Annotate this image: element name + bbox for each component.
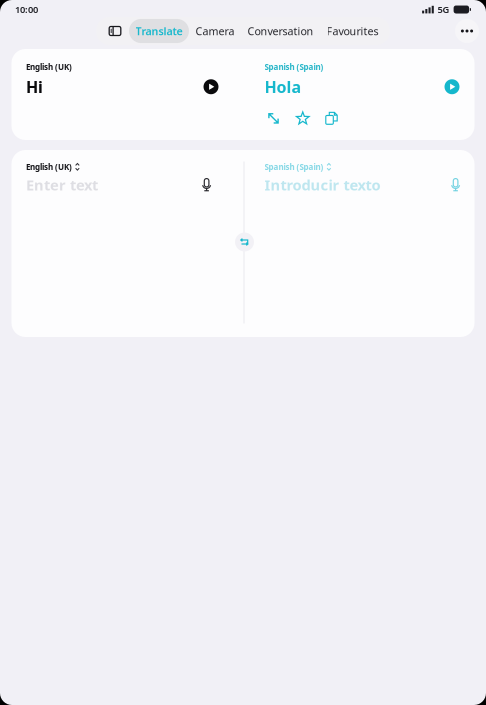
staticText: Hola bbox=[264, 76, 301, 97]
staticText: 5G bbox=[438, 3, 450, 16]
button[interactable]: Play Spanish audio bbox=[444, 79, 459, 94]
staticText: English (UK) bbox=[26, 61, 72, 72]
staticText: Conversation bbox=[247, 24, 313, 38]
button[interactable]: Dictate English bbox=[200, 178, 213, 192]
button[interactable]: Swap languages bbox=[235, 232, 254, 251]
button[interactable]: Expand translation bbox=[266, 111, 280, 125]
button[interactable]: Dictate Spanish bbox=[449, 178, 462, 192]
button[interactable]: Translate bbox=[129, 19, 189, 43]
button[interactable]: Copy translation bbox=[324, 111, 338, 125]
button[interactable]: Play English audio bbox=[203, 79, 218, 94]
staticText: Enter text bbox=[26, 175, 98, 195]
staticText: 10:00 bbox=[15, 3, 38, 16]
staticText: Hi bbox=[26, 76, 43, 97]
button[interactable]: Favourites bbox=[320, 19, 385, 43]
button[interactable]: Conversation bbox=[241, 19, 320, 43]
staticText: English (UK) bbox=[26, 161, 72, 172]
button[interactable]: Camera bbox=[189, 19, 241, 43]
staticText: Favourites bbox=[326, 24, 378, 38]
staticText: Translate bbox=[135, 24, 182, 38]
button[interactable]: Add to favourites bbox=[295, 111, 310, 125]
staticText: Camera bbox=[195, 24, 234, 38]
button[interactable]: Show sidebar bbox=[101, 21, 129, 41]
staticText: Spanish (Spain) bbox=[264, 161, 323, 172]
button[interactable]: More options bbox=[455, 19, 479, 43]
staticText: Spanish (Spain) bbox=[264, 61, 323, 72]
staticText: Introducir texto bbox=[264, 175, 380, 195]
